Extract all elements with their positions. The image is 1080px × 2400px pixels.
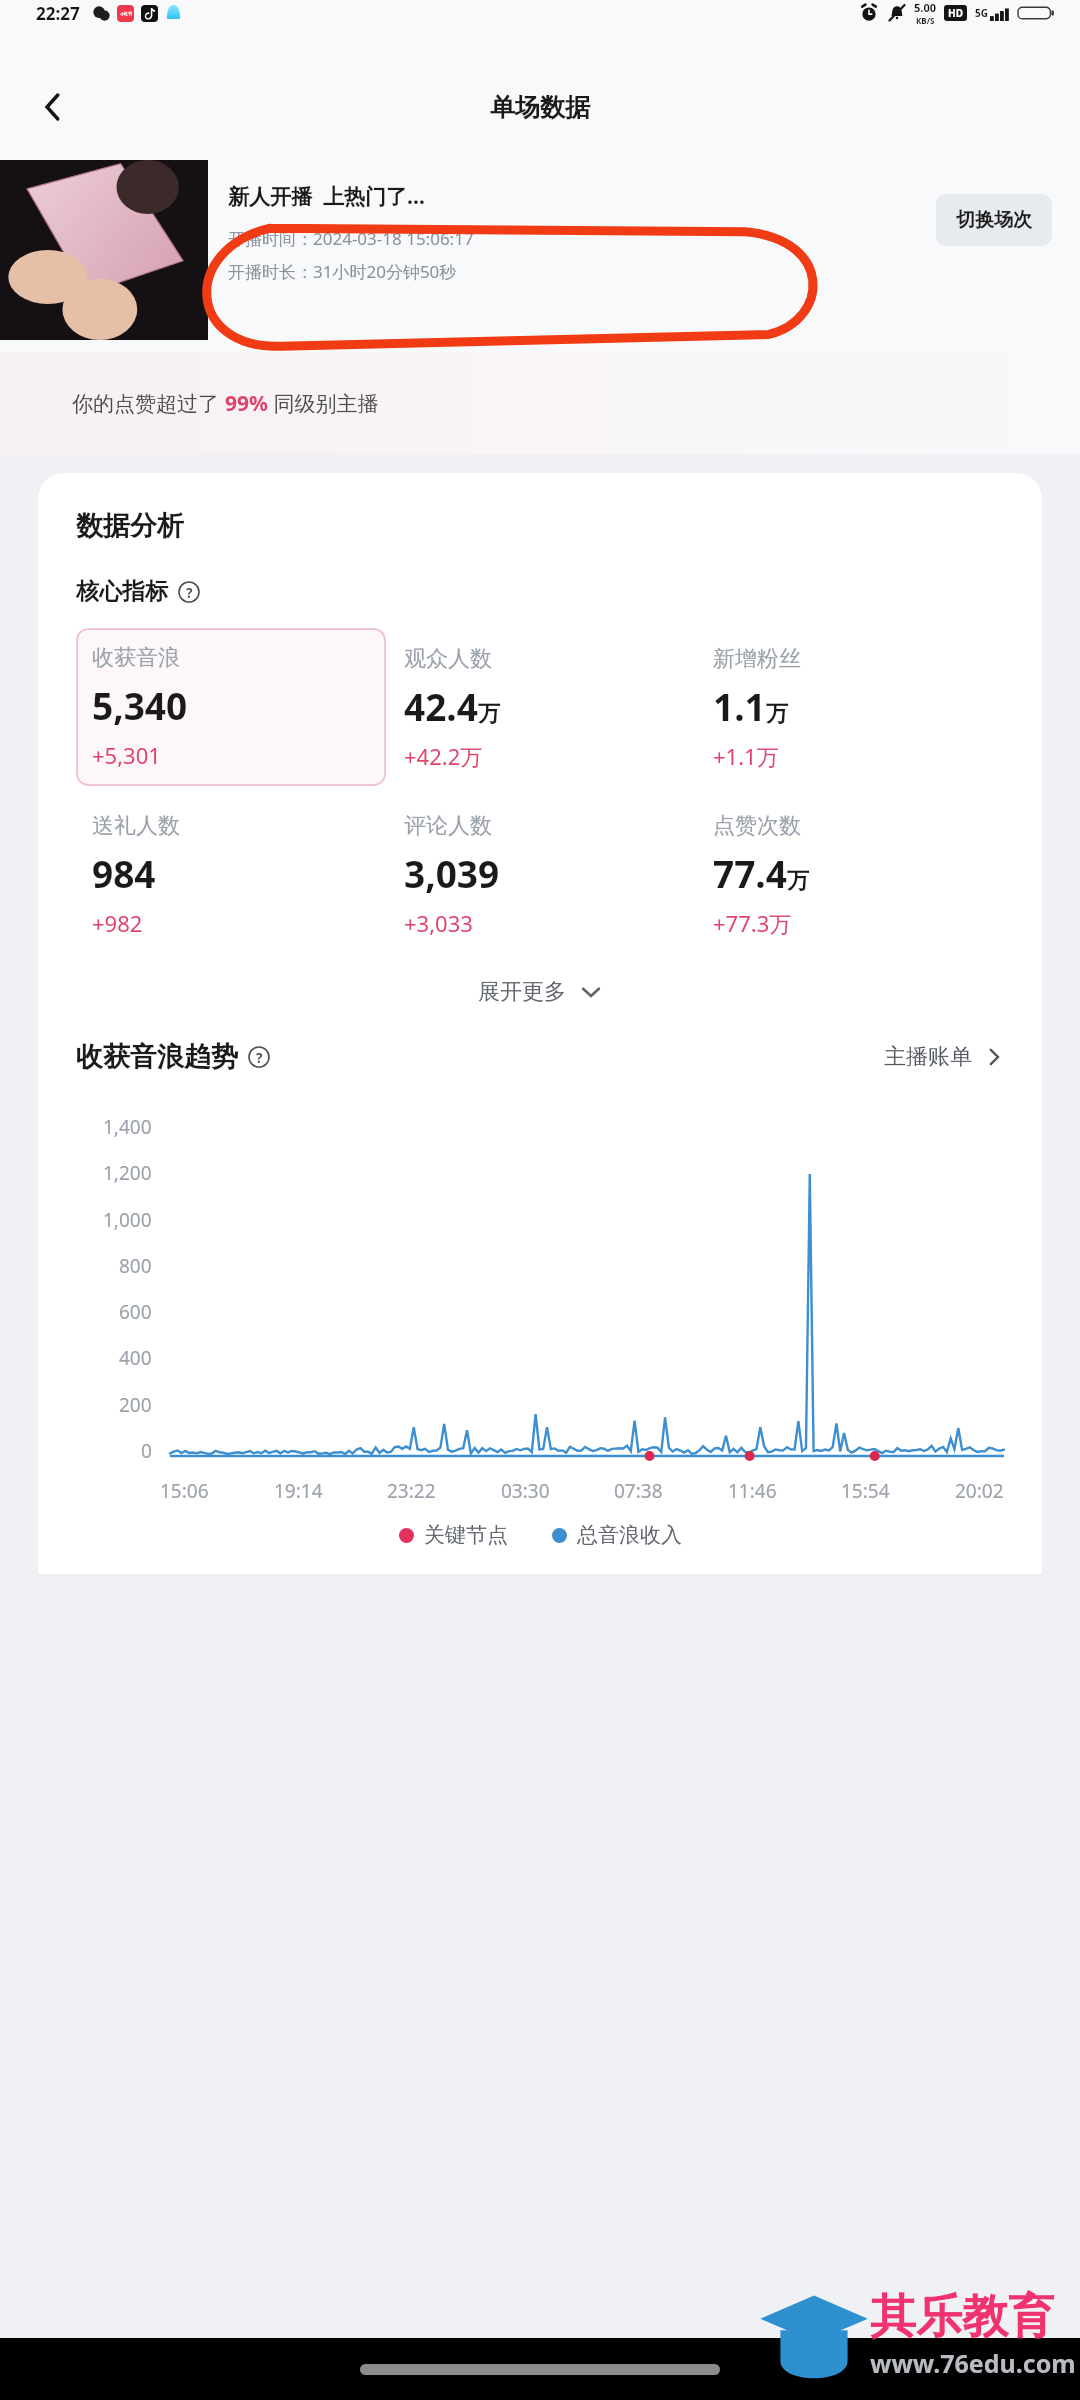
- staticText: HD: [948, 6, 963, 20]
- staticText: 1,000: [103, 1207, 152, 1233]
- staticText: 07:38: [614, 1478, 663, 1504]
- staticText: 你的点赞超过了: [72, 389, 225, 418]
- staticText: ?: [186, 583, 193, 602]
- staticText: 600: [119, 1299, 152, 1325]
- staticText: 新人开播 上热门了…: [228, 182, 425, 211]
- button[interactable]: 主播账单: [884, 1043, 1004, 1071]
- staticText: KB/S: [916, 15, 935, 26]
- staticText: 1.1: [713, 681, 766, 731]
- staticText: 观众人数: [404, 645, 492, 673]
- staticText: 总音浪收入: [577, 1522, 682, 1548]
- staticText: +3,033: [404, 908, 473, 938]
- staticText: 主播账单: [884, 1043, 972, 1071]
- staticText: 1,200: [103, 1160, 152, 1186]
- staticText: 同级别主播: [268, 389, 379, 418]
- staticText: 其乐教育: [870, 2288, 1054, 2346]
- button[interactable]: 新增粉丝: [695, 628, 1004, 771]
- staticText: 关键节点: [424, 1522, 508, 1548]
- staticText: +77.3万: [713, 908, 792, 938]
- staticText: 5G: [975, 6, 988, 20]
- button[interactable]: Back: [22, 76, 84, 138]
- staticText: 19:14: [274, 1478, 323, 1504]
- staticText: 3,039: [404, 848, 500, 898]
- staticText: 22:27: [36, 2, 80, 25]
- staticText: 400: [119, 1345, 152, 1371]
- staticText: 15:54: [841, 1478, 890, 1504]
- staticText: 5.00: [914, 0, 936, 15]
- staticText: 单场数据: [490, 92, 590, 123]
- button[interactable]: 观众人数: [386, 628, 695, 771]
- staticText: 收获音浪: [92, 644, 180, 672]
- staticText: 核心指标: [76, 577, 168, 606]
- staticText: www.76edu.com: [870, 2346, 1076, 2380]
- staticText: 小红书: [120, 11, 132, 16]
- staticText: 评论人数: [404, 812, 492, 840]
- button[interactable]: 评论人数: [386, 812, 695, 938]
- staticText: 万: [478, 700, 500, 728]
- staticText: 新增粉丝: [713, 645, 801, 673]
- staticText: 万: [766, 700, 788, 728]
- staticText: +5,301: [92, 740, 161, 770]
- staticText: 万: [787, 867, 809, 895]
- button[interactable]: 切换场次: [936, 194, 1052, 246]
- staticText: +42.2万: [404, 741, 483, 771]
- button[interactable]: 展开更多: [76, 968, 1004, 1016]
- staticText: 800: [119, 1253, 152, 1279]
- staticText: 展开更多: [478, 978, 566, 1006]
- staticText: 收获音浪趋势: [76, 1040, 238, 1074]
- staticText: 20:02: [955, 1478, 1004, 1504]
- staticText: 数据分析: [76, 509, 184, 543]
- staticText: 点赞次数: [713, 812, 801, 840]
- staticText: 0: [141, 1438, 152, 1464]
- staticText: 15:06: [160, 1478, 209, 1504]
- staticText: 11:46: [728, 1478, 777, 1504]
- staticText: 42.4: [404, 681, 478, 731]
- staticText: 1,400: [103, 1114, 152, 1140]
- staticText: 77.4: [713, 848, 787, 898]
- staticText: +1.1万: [713, 741, 779, 771]
- staticText: 03:30: [501, 1478, 550, 1504]
- button[interactable]: 收获音浪: [76, 628, 386, 786]
- staticText: 200: [119, 1392, 152, 1418]
- button[interactable]: 点赞次数: [695, 812, 1004, 938]
- button[interactable]: 送礼人数: [76, 812, 386, 938]
- staticText: 送礼人数: [92, 812, 180, 840]
- staticText: 开播时长：31小时20分钟50秒: [228, 260, 457, 283]
- staticText: 切换场次: [956, 208, 1032, 232]
- staticText: 99%: [225, 389, 268, 418]
- staticText: 984: [92, 848, 156, 898]
- staticText: 开播时间：2024-03-18 15:06:17: [228, 227, 474, 250]
- staticText: +982: [92, 908, 143, 938]
- staticText: 5,340: [92, 680, 188, 730]
- staticText: 23:22: [387, 1478, 436, 1504]
- button[interactable]: 你的点赞超过了: [0, 352, 1080, 454]
- staticText: ?: [256, 1048, 263, 1067]
